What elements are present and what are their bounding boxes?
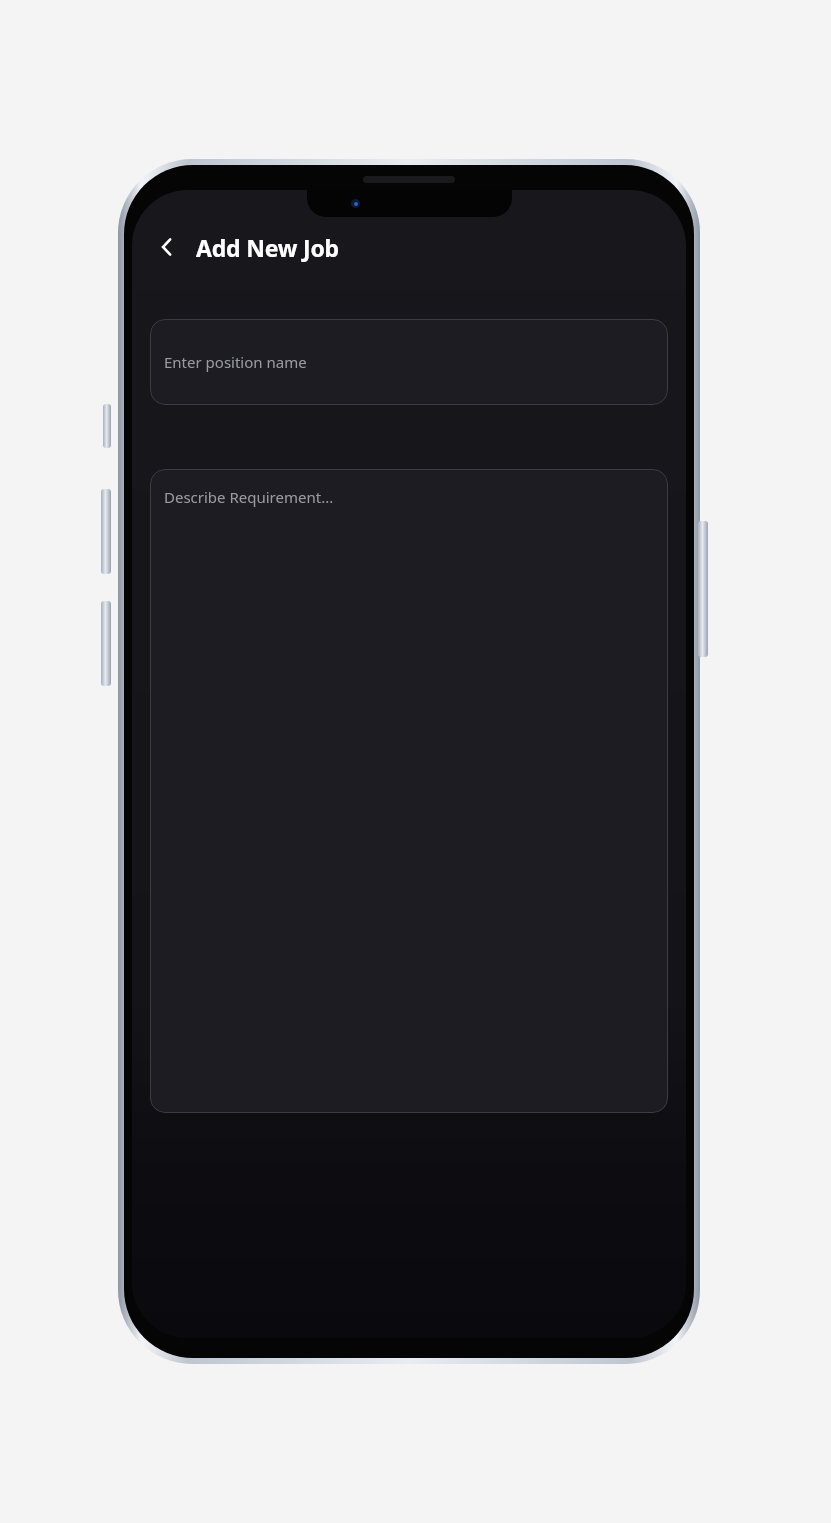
staticText: Describe Requirement... [164,487,334,507]
button[interactable]: Enter position name [150,319,668,405]
staticText: Add New Job [196,232,339,263]
staticText: Enter position name [164,352,307,372]
button[interactable]: Back [146,226,188,268]
button[interactable]: Describe Requirement... [150,469,668,1113]
